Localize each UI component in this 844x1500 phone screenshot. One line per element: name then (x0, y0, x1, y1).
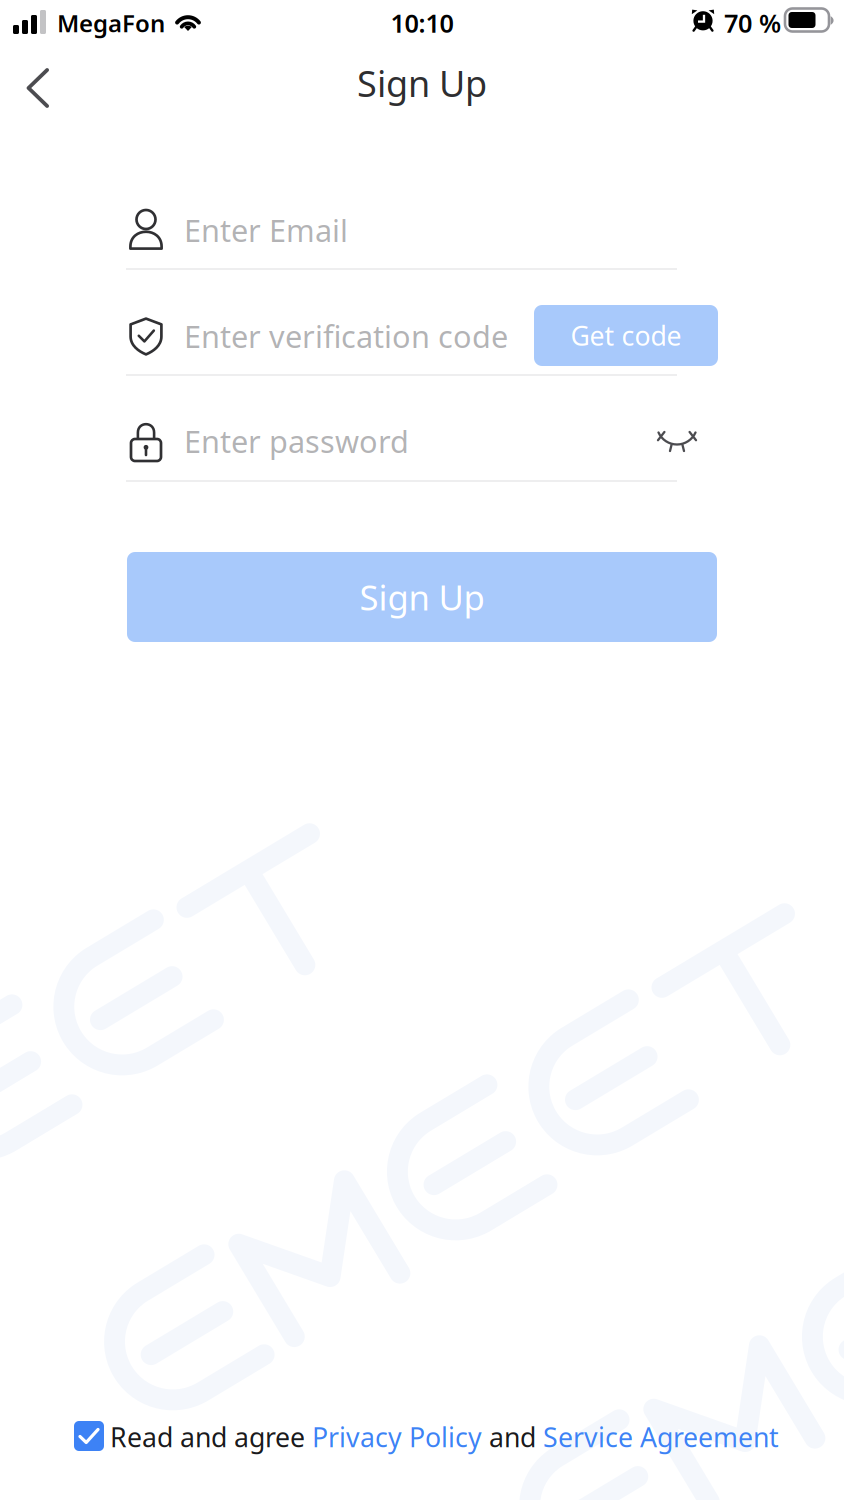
staticText: Enter Email (184, 210, 348, 250)
staticText: Get code (570, 318, 681, 353)
staticText: Enter verification code (184, 316, 508, 356)
button[interactable]: Privacy Policy (312, 1419, 482, 1455)
staticText: Sign Up (357, 59, 487, 107)
staticText: Sign Up (359, 574, 484, 620)
button[interactable]: Show password (646, 412, 708, 474)
staticText: MegaFon (57, 7, 165, 39)
button[interactable]: Agree to terms (74, 1421, 104, 1451)
button[interactable]: Get code (534, 305, 718, 366)
button[interactable]: Back (2, 52, 74, 124)
staticText: Service Agreement (543, 1419, 779, 1455)
staticText: 10:10 (390, 6, 453, 40)
staticText: and (482, 1419, 543, 1455)
staticText: Privacy Policy (312, 1419, 482, 1455)
button[interactable]: Service Agreement (543, 1419, 779, 1455)
button[interactable]: Sign Up (127, 552, 717, 642)
staticText: 70 % (724, 6, 781, 40)
staticText: Enter password (184, 421, 409, 461)
staticText: Read and agree (110, 1419, 312, 1455)
